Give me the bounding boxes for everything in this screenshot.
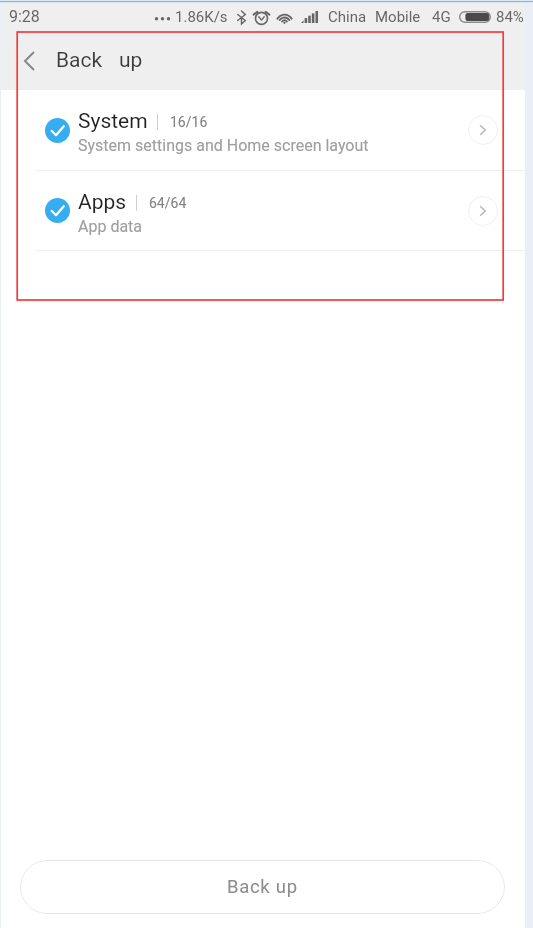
staticText: 9:28 [9, 7, 40, 26]
staticText: Apps [78, 190, 127, 215]
staticText: 84% [496, 8, 524, 26]
staticText: 16/16 [170, 114, 208, 130]
staticText: System [78, 109, 148, 134]
staticText: Back up [227, 876, 298, 898]
staticText: China [328, 8, 367, 26]
staticText: up [119, 48, 143, 73]
staticText: 4G [432, 8, 451, 26]
staticText: System settings and Home screen layout [78, 136, 369, 155]
button[interactable]: Back [9, 41, 49, 81]
staticText: App data [78, 217, 143, 236]
button[interactable]: Apps [1, 171, 525, 250]
button[interactable]: System [1, 90, 525, 170]
staticText: Mobile [375, 8, 421, 26]
button[interactable]: Back up [20, 860, 505, 914]
button[interactable]: Details [468, 115, 498, 145]
staticText: 1.86K/s [175, 8, 228, 26]
button[interactable]: Details [468, 196, 498, 226]
staticText: Back [56, 48, 103, 73]
staticText: 64/64 [149, 195, 187, 211]
